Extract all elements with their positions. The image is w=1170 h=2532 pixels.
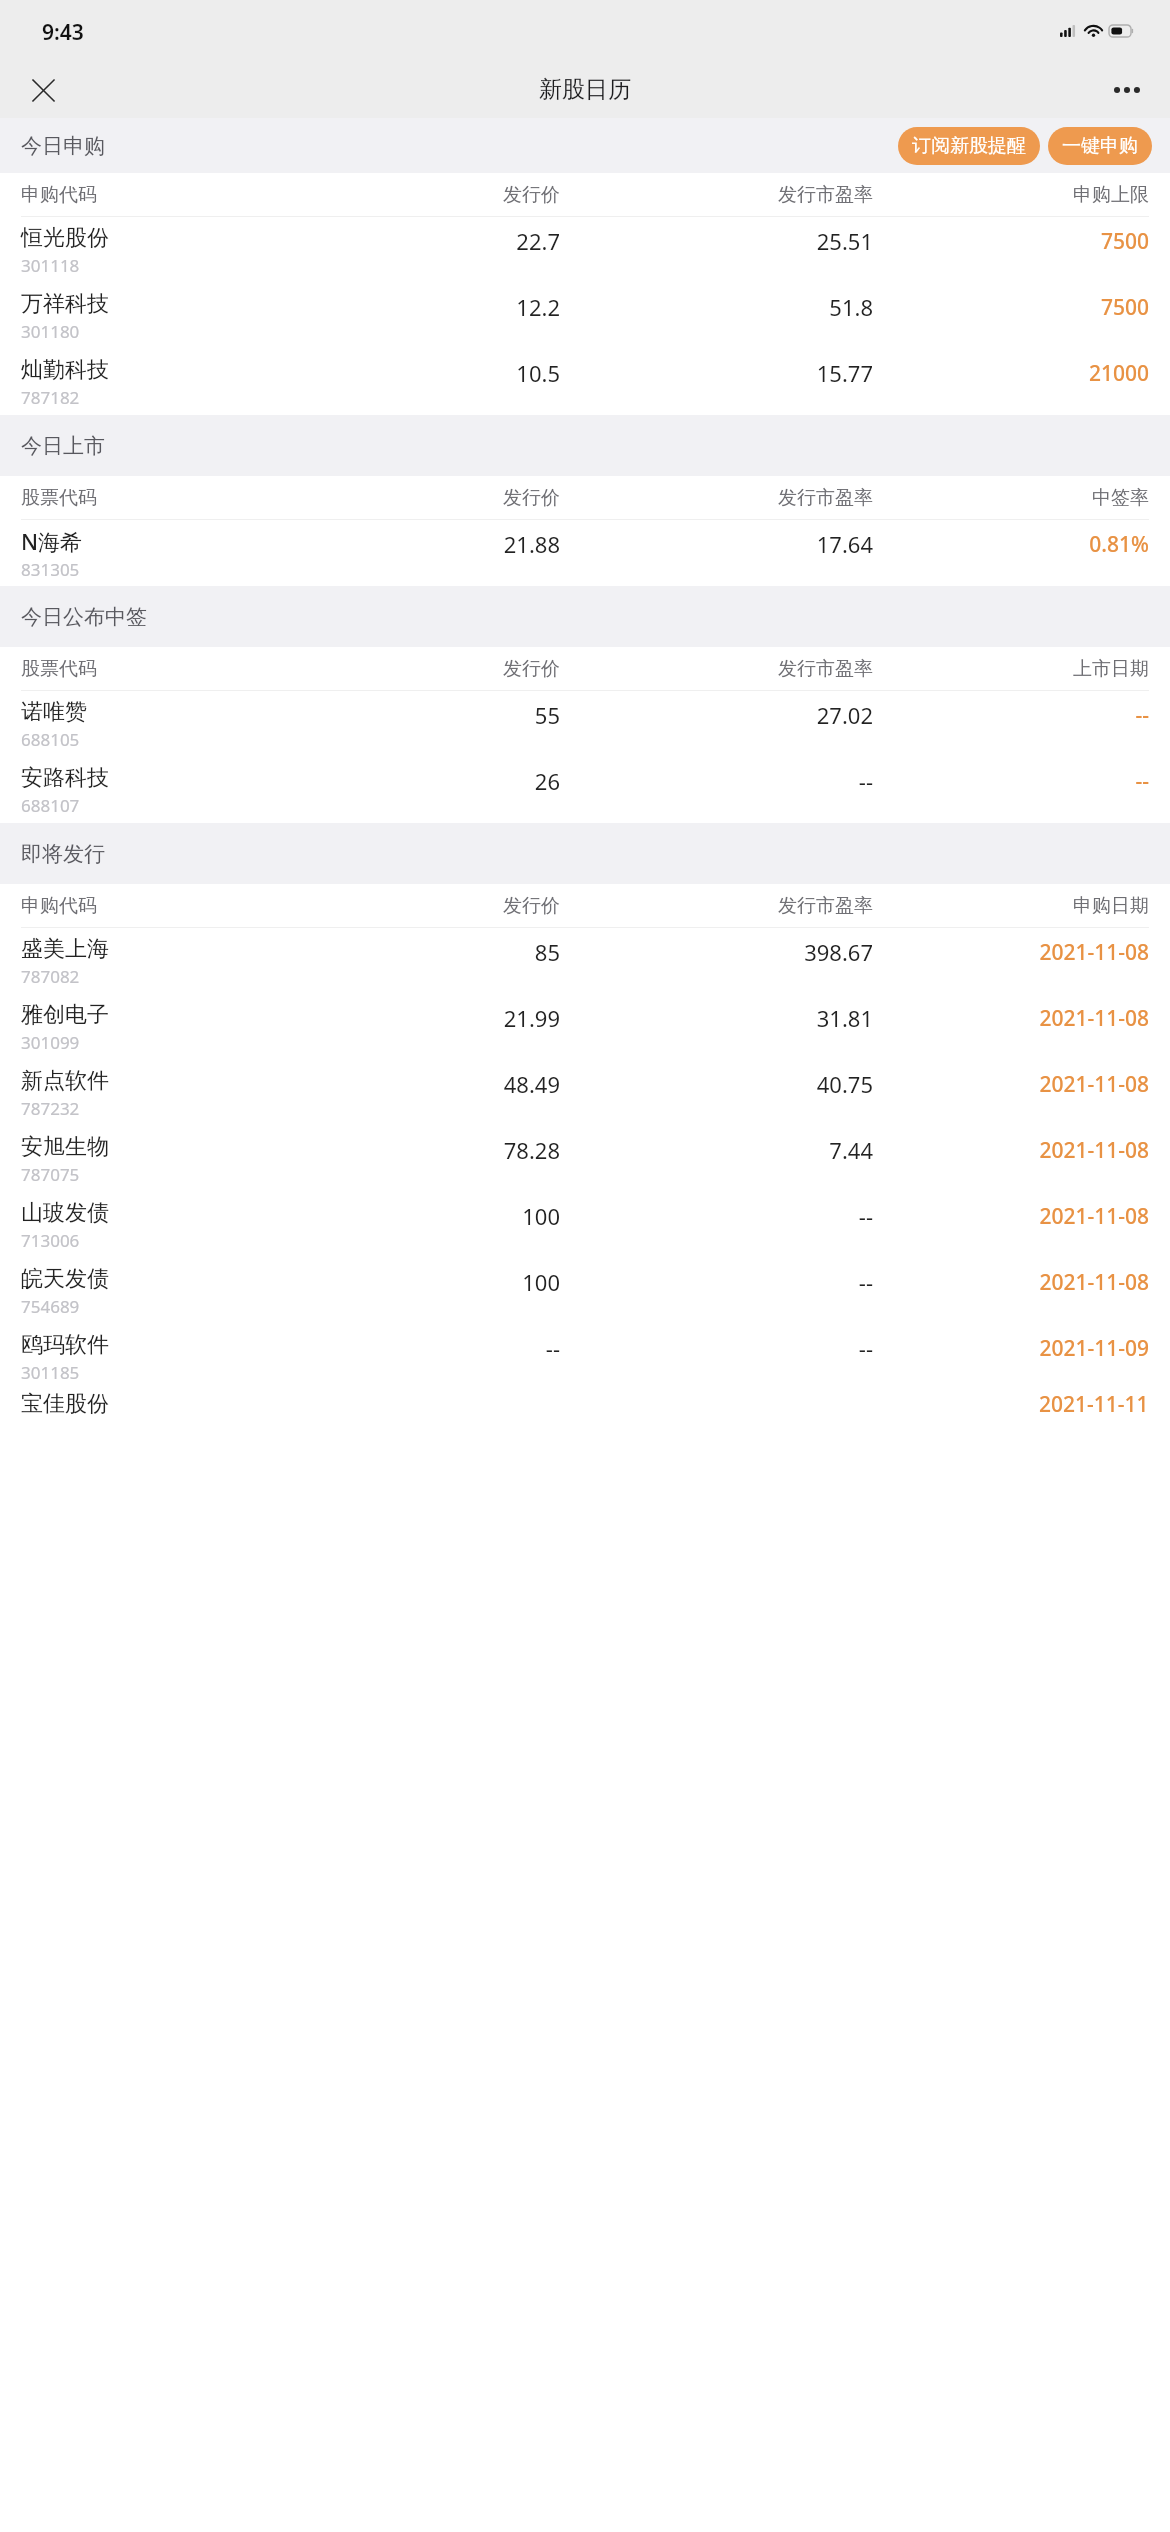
staticText: 发行价	[309, 486, 560, 510]
staticText: 100	[309, 1201, 560, 1231]
staticText: --	[560, 766, 873, 796]
staticText: 31.81	[560, 1003, 873, 1033]
staticText: 754689	[21, 1295, 80, 1318]
button[interactable]: More options	[1102, 65, 1152, 115]
button[interactable]: 盛美上海	[0, 928, 1170, 994]
staticText: 今日公布中签	[21, 604, 147, 630]
staticText: 2021-11-08	[873, 1004, 1149, 1033]
staticText: 787182	[21, 386, 80, 409]
staticText: 40.75	[560, 1069, 873, 1099]
button[interactable]: 安旭生物	[0, 1126, 1170, 1192]
staticText: 万祥科技	[21, 290, 109, 318]
staticText: 诺唯赞	[21, 698, 87, 726]
staticText: 21.99	[309, 1003, 560, 1033]
button[interactable]: N海希	[0, 520, 1170, 586]
staticText: 55	[309, 700, 560, 730]
staticText: 301180	[21, 320, 80, 343]
staticText: 17.64	[560, 529, 873, 559]
staticText: 85	[309, 937, 560, 967]
button[interactable]: 皖天发债	[0, 1258, 1170, 1324]
staticText: 今日申购	[21, 133, 105, 159]
staticText: 股票代码	[21, 657, 309, 681]
staticText: 787082	[21, 965, 80, 988]
staticText: --	[560, 1333, 873, 1363]
staticText: 安路科技	[21, 764, 109, 792]
staticText: 48.49	[309, 1069, 560, 1099]
staticText: 787232	[21, 1097, 80, 1120]
staticText: 7500	[873, 227, 1149, 256]
staticText: 301099	[21, 1031, 80, 1054]
staticText: 26	[309, 766, 560, 796]
staticText: 301118	[21, 254, 80, 277]
staticText: --	[873, 767, 1149, 796]
staticText: 301185	[21, 1361, 80, 1384]
staticText: --	[873, 701, 1149, 730]
staticText: 25.51	[560, 226, 873, 256]
staticText: 发行市盈率	[560, 657, 873, 681]
staticText: 2021-11-11	[1039, 1390, 1149, 1418]
staticText: 0.81%	[873, 530, 1149, 559]
button[interactable]: 山玻发债	[0, 1192, 1170, 1258]
staticText: 78.28	[309, 1135, 560, 1165]
staticText: 2021-11-08	[873, 938, 1149, 967]
staticText: 21000	[873, 359, 1149, 388]
button[interactable]: 灿勤科技	[0, 349, 1170, 415]
staticText: 申购日期	[873, 894, 1149, 918]
staticText: 订阅新股提醒	[912, 134, 1026, 158]
button[interactable]: 诺唯赞	[0, 691, 1170, 757]
button[interactable]: 雅创电子	[0, 994, 1170, 1060]
staticText: 2021-11-08	[873, 1268, 1149, 1297]
button[interactable]: 订阅新股提醒	[898, 127, 1040, 165]
staticText: 发行市盈率	[560, 183, 873, 207]
staticText: 2021-11-08	[873, 1136, 1149, 1165]
staticText: 688107	[21, 794, 80, 817]
staticText: 鸥玛软件	[21, 1331, 109, 1359]
staticText: 713006	[21, 1229, 80, 1252]
staticText: 股票代码	[21, 486, 309, 510]
staticText: 787075	[21, 1163, 80, 1186]
button[interactable]: 新点软件	[0, 1060, 1170, 1126]
button[interactable]: 万祥科技	[0, 283, 1170, 349]
staticText: 申购代码	[21, 894, 309, 918]
staticText: 7500	[873, 293, 1149, 322]
staticText: 一键申购	[1062, 134, 1138, 158]
staticText: 发行价	[309, 657, 560, 681]
staticText: --	[309, 1333, 560, 1363]
staticText: 即将发行	[21, 841, 105, 867]
staticText: 中签率	[873, 486, 1149, 510]
staticText: 申购上限	[873, 183, 1149, 207]
staticText: 51.8	[560, 292, 873, 322]
button[interactable]: 恒光股份	[0, 217, 1170, 283]
staticText: 27.02	[560, 700, 873, 730]
staticText: 12.2	[309, 292, 560, 322]
staticText: 831305	[21, 558, 80, 581]
staticText: 9:43	[42, 18, 84, 47]
staticText: 2021-11-08	[873, 1202, 1149, 1231]
staticText: 398.67	[560, 937, 873, 967]
staticText: 发行价	[309, 183, 560, 207]
staticText: --	[560, 1267, 873, 1297]
staticText: 盛美上海	[21, 935, 109, 963]
staticText: 发行价	[309, 894, 560, 918]
button[interactable]: 安路科技	[0, 757, 1170, 823]
staticText: 21.88	[309, 529, 560, 559]
staticText: 雅创电子	[21, 1001, 109, 1029]
staticText: 688105	[21, 728, 80, 751]
staticText: 山玻发债	[21, 1199, 109, 1227]
staticText: 上市日期	[873, 657, 1149, 681]
staticText: 7.44	[560, 1135, 873, 1165]
staticText: 灿勤科技	[21, 356, 109, 384]
button[interactable]: 鸥玛软件	[0, 1324, 1170, 1390]
button[interactable]: 一键申购	[1048, 127, 1152, 165]
staticText: 今日上市	[21, 433, 105, 459]
staticText: 新股日历	[539, 75, 631, 104]
staticText: --	[560, 1201, 873, 1231]
staticText: 发行市盈率	[560, 894, 873, 918]
staticText: 发行市盈率	[560, 486, 873, 510]
staticText: 新点软件	[21, 1067, 109, 1095]
staticText: 2021-11-09	[873, 1334, 1149, 1363]
staticText: 申购代码	[21, 183, 309, 207]
staticText: 宝佳股份	[21, 1390, 109, 1418]
button[interactable]: Close	[18, 65, 68, 115]
staticText: 恒光股份	[21, 224, 109, 252]
